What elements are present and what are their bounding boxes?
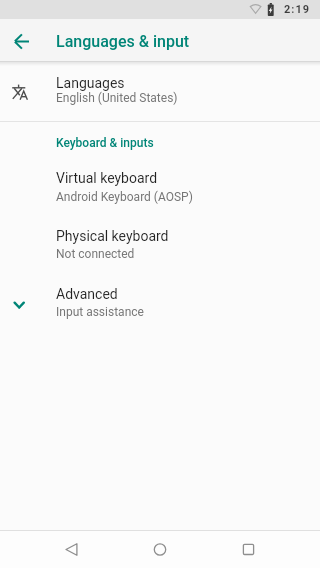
button[interactable] — [0, 276, 320, 332]
staticText: Advanced — [56, 286, 118, 302]
staticText: English (United States) — [56, 91, 178, 105]
staticText: Input assistance — [56, 305, 144, 319]
button[interactable] — [51, 531, 92, 568]
staticText: 2:19 — [284, 3, 311, 16]
staticText: Not connected — [56, 247, 135, 261]
button[interactable] — [0, 161, 320, 218]
button[interactable] — [0, 62, 320, 121]
staticText: Physical keyboard — [56, 228, 169, 244]
button[interactable] — [228, 531, 269, 568]
button[interactable] — [8, 27, 37, 56]
staticText: Keyboard & inputs — [56, 136, 154, 150]
staticText: Android Keyboard (AOSP) — [56, 190, 193, 204]
staticText: Languages & input — [56, 32, 190, 51]
button[interactable] — [0, 218, 320, 276]
button[interactable] — [140, 531, 181, 568]
staticText: Virtual keyboard — [56, 170, 158, 186]
staticText: Languages — [56, 75, 125, 91]
